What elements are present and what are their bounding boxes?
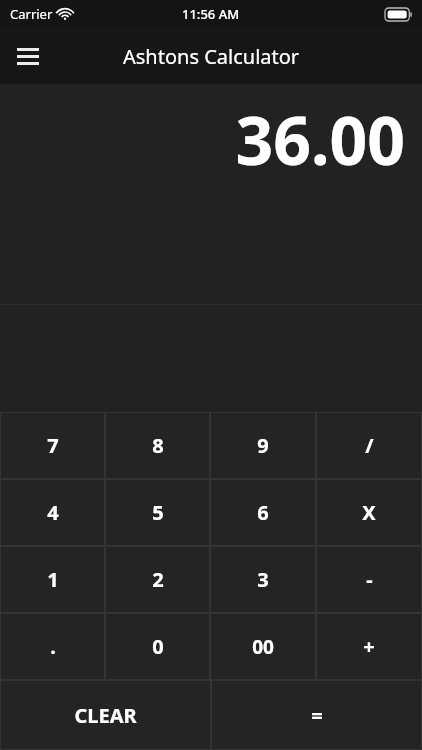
staticText: 4 <box>47 499 59 526</box>
staticText: 6 <box>257 499 269 526</box>
button[interactable]: / <box>316 412 422 479</box>
button[interactable]: 00 <box>210 613 316 680</box>
button[interactable]: 1 <box>0 546 105 613</box>
button[interactable]: = <box>211 680 422 750</box>
button[interactable]: X <box>316 479 422 546</box>
staticText: 8 <box>152 432 164 459</box>
staticText: - <box>366 566 373 593</box>
staticText: Carrier <box>10 5 53 23</box>
button[interactable]: 7 <box>0 412 105 479</box>
button[interactable]: CLEAR <box>0 680 211 750</box>
staticText: 9 <box>257 432 269 459</box>
button[interactable]: 2 <box>105 546 210 613</box>
staticText: = <box>311 702 323 729</box>
button[interactable]: - <box>316 546 422 613</box>
button[interactable]: 3 <box>210 546 316 613</box>
staticText: 0 <box>152 633 164 660</box>
staticText: X <box>362 499 376 526</box>
staticText: . <box>50 633 56 660</box>
staticText: 3 <box>257 566 269 593</box>
staticText: 2 <box>152 566 164 593</box>
staticText: 7 <box>47 432 59 459</box>
staticText: CLEAR <box>74 702 137 729</box>
staticText: 00 <box>252 634 274 660</box>
staticText: 36.00 <box>235 94 405 184</box>
button[interactable]: . <box>0 613 105 680</box>
staticText: + <box>363 633 375 660</box>
staticText: 11:56 AM <box>182 5 240 23</box>
staticText: 1 <box>47 566 59 593</box>
staticText: 5 <box>152 499 164 526</box>
button[interactable]: 0 <box>105 613 210 680</box>
button[interactable]: 9 <box>210 412 316 479</box>
button[interactable]: 5 <box>105 479 210 546</box>
button[interactable]: Open navigation menu <box>0 28 56 84</box>
button[interactable]: 6 <box>210 479 316 546</box>
button[interactable]: + <box>316 613 422 680</box>
button[interactable]: 8 <box>105 412 210 479</box>
staticText: Ashtons Calculator <box>123 43 300 70</box>
button[interactable]: 4 <box>0 479 105 546</box>
staticText: / <box>365 432 374 459</box>
